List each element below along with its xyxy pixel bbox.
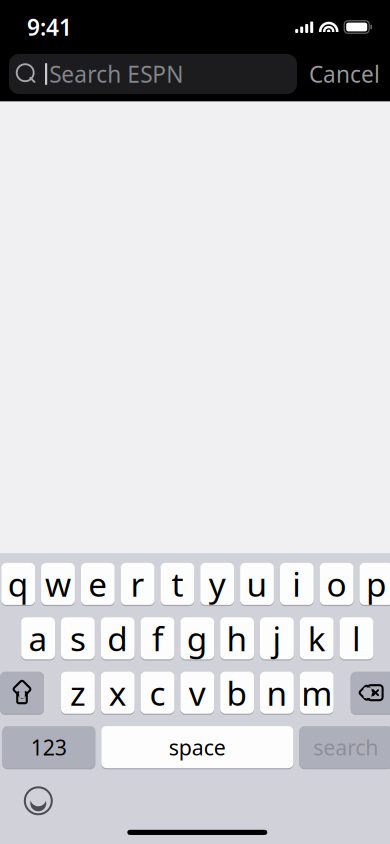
button[interactable]: z — [61, 671, 95, 714]
button[interactable]: l — [340, 617, 373, 660]
staticText: x — [109, 671, 127, 715]
staticText: g — [187, 616, 208, 660]
staticText: n — [266, 671, 287, 715]
button[interactable]: s — [61, 617, 95, 660]
staticText: Cancel — [309, 59, 380, 89]
staticText: f — [152, 616, 163, 660]
button[interactable]: g — [180, 617, 214, 660]
staticText: o — [327, 562, 347, 606]
staticText: e — [88, 562, 107, 606]
staticText: w — [45, 562, 71, 606]
staticText: r — [131, 562, 145, 606]
button[interactable]: n — [260, 671, 294, 714]
button[interactable]: Delete — [351, 671, 390, 714]
button[interactable]: h — [220, 617, 254, 660]
button[interactable]: Cancel — [297, 54, 390, 94]
staticText: i — [292, 562, 301, 606]
button[interactable]: e — [81, 562, 115, 606]
button[interactable]: o — [320, 562, 353, 606]
button[interactable]: a — [21, 617, 55, 660]
button[interactable]: r — [121, 562, 154, 606]
staticText: search — [313, 733, 378, 761]
button[interactable]: k — [300, 617, 334, 660]
staticText: p — [366, 562, 387, 606]
button[interactable]: Search ESPN — [9, 54, 297, 94]
staticText: z — [70, 671, 86, 715]
button[interactable]: v — [180, 671, 214, 714]
button[interactable]: u — [240, 562, 274, 606]
staticText: j — [272, 616, 281, 660]
staticText: m — [301, 671, 332, 715]
button[interactable]: c — [141, 671, 174, 714]
staticText: t — [171, 562, 183, 606]
staticText: q — [8, 562, 29, 606]
staticText: d — [107, 616, 128, 660]
button[interactable]: b — [220, 671, 254, 714]
button[interactable]: Shift — [0, 671, 44, 714]
button[interactable]: search — [299, 725, 390, 769]
button[interactable]: Emoji keyboard — [14, 780, 62, 822]
button[interactable]: p — [359, 562, 390, 606]
button[interactable]: m — [300, 671, 334, 714]
button[interactable]: i — [280, 562, 314, 606]
button[interactable]: d — [101, 617, 135, 660]
button[interactable]: w — [41, 562, 75, 606]
staticText: a — [29, 616, 48, 660]
button[interactable]: f — [141, 617, 174, 660]
button[interactable]: x — [101, 671, 135, 714]
button[interactable]: y — [200, 562, 234, 606]
button[interactable]: space — [101, 725, 293, 769]
staticText: 9:41 — [27, 12, 72, 42]
staticText: h — [227, 616, 248, 660]
staticText: v — [189, 671, 206, 715]
staticText: b — [227, 671, 248, 715]
staticText: Search ESPN — [49, 59, 183, 89]
button[interactable]: 123 — [2, 725, 95, 769]
staticText: y — [209, 562, 226, 606]
staticText: c — [149, 671, 165, 715]
staticText: 123 — [31, 733, 67, 761]
staticText: u — [246, 562, 267, 606]
staticText: l — [352, 616, 361, 660]
button[interactable]: t — [160, 562, 194, 606]
staticText: k — [308, 616, 326, 660]
button[interactable]: j — [260, 617, 294, 660]
button[interactable]: q — [1, 562, 35, 606]
staticText: s — [70, 616, 86, 660]
staticText: space — [169, 733, 226, 761]
